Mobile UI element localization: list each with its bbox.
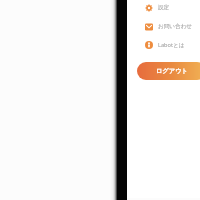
button[interactable]: ログアウト xyxy=(137,62,200,80)
button[interactable]: Settings xyxy=(145,0,200,17)
button[interactable]: Contact xyxy=(145,17,200,36)
staticText: 設定 xyxy=(158,4,170,11)
staticText: お問い合わせ xyxy=(158,23,193,30)
staticText: ログアウト xyxy=(156,67,188,75)
staticText: Labotとは xyxy=(158,41,185,49)
button[interactable]: About Labot xyxy=(145,36,200,54)
